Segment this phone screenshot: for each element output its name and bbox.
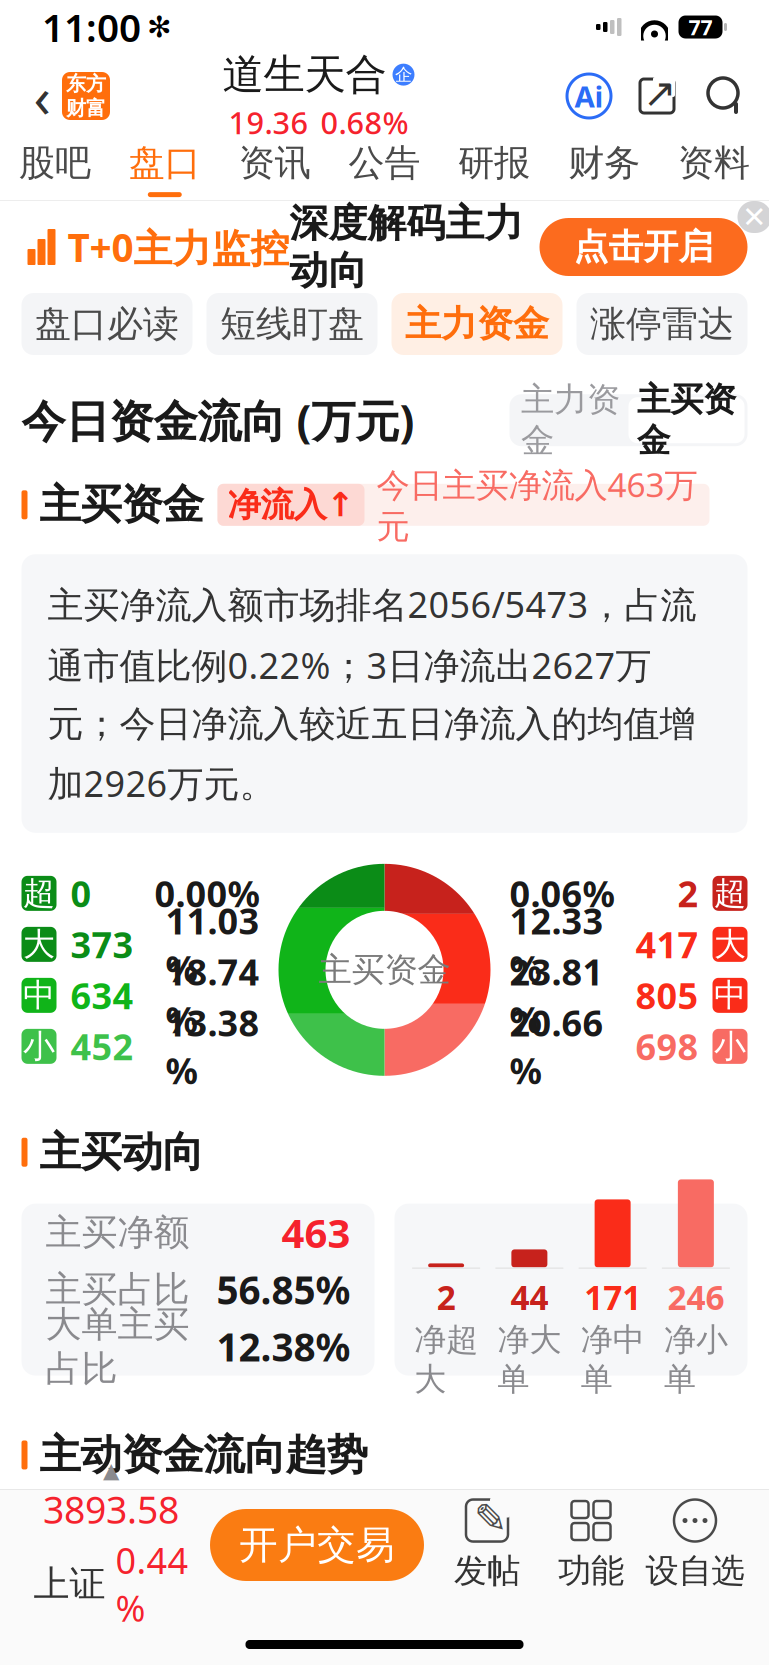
staticText: 0 xyxy=(70,869,91,917)
staticText: 2 xyxy=(437,1275,456,1319)
staticText: 2 xyxy=(677,869,698,917)
staticText: 大 xyxy=(23,925,55,964)
button[interactable]: 主力资金 xyxy=(391,293,562,355)
staticText: 超 xyxy=(23,874,55,913)
staticText: 主买动向 xyxy=(39,1127,203,1178)
staticText: 短线盯盘 xyxy=(220,302,364,346)
button[interactable]: 功能 xyxy=(539,1498,643,1591)
staticText: 净小单 xyxy=(664,1320,728,1399)
button[interactable]: 搜索 xyxy=(703,74,747,118)
staticText: 资讯 xyxy=(239,141,311,185)
staticText: 0.06% xyxy=(509,869,614,917)
staticText: 主买资金 xyxy=(318,949,450,990)
staticText: 盘口 xyxy=(129,141,201,185)
button[interactable]: 点击开启 xyxy=(539,218,747,276)
staticText: 净大单 xyxy=(497,1320,561,1399)
staticText: 深度解码主力动向 xyxy=(289,199,523,294)
staticText: 634 xyxy=(70,971,133,1019)
button[interactable]: 资料 xyxy=(659,138,769,200)
staticText: 企 xyxy=(395,64,412,85)
staticText: 发帖 xyxy=(454,1550,520,1591)
staticText: 净中单 xyxy=(581,1320,645,1399)
staticText: 小 xyxy=(23,1027,55,1066)
staticText: 12.33% xyxy=(509,896,603,992)
staticText: 主买占比 xyxy=(45,1267,189,1312)
button[interactable]: 股吧 xyxy=(0,138,110,200)
staticText: 净流入 xyxy=(227,484,326,525)
button[interactable]: 公告 xyxy=(330,138,439,200)
button[interactable]: AI 助手 xyxy=(567,74,611,118)
staticText: 主买净流入额市场排名2056/5473，占流通市值比例0.22%；3日净流出26… xyxy=(47,580,696,807)
staticText: 中 xyxy=(714,976,746,1015)
button[interactable]: ▲ xyxy=(22,1458,200,1632)
staticText: 公告 xyxy=(348,141,420,185)
staticText: 道生天合 xyxy=(222,49,386,100)
staticText: 超 xyxy=(714,874,746,913)
staticText: 小 xyxy=(714,1027,746,1066)
staticText: 417 xyxy=(635,920,698,968)
staticText: 11:00 xyxy=(42,1,141,53)
staticText: 财富 xyxy=(66,96,106,121)
staticText: 涨停雷达 xyxy=(590,302,734,346)
staticText: ▲ xyxy=(103,1458,119,1482)
button[interactable]: 关闭 xyxy=(737,201,769,233)
staticText: 今日资金流向 (万元) xyxy=(21,391,414,449)
staticText: ↗ xyxy=(643,70,677,116)
staticText: ✻ xyxy=(147,10,172,44)
button[interactable]: 财务 xyxy=(549,138,659,200)
staticText: 246 xyxy=(667,1275,724,1319)
staticText: 主力资金 xyxy=(521,379,620,461)
staticText: ‹ xyxy=(33,59,50,133)
button[interactable]: ✎ xyxy=(435,1498,539,1591)
staticText: 23.81% xyxy=(509,947,603,1043)
staticText: 股吧 xyxy=(19,141,91,185)
staticText: 主买净流入 (万元) xyxy=(49,1504,309,1549)
staticText: 805 xyxy=(635,971,698,1019)
button[interactable]: 分享 xyxy=(635,74,679,118)
staticText: T+0主力监控 xyxy=(67,221,289,273)
staticText: 0.44% xyxy=(115,1536,188,1632)
staticText: 财务 xyxy=(568,141,640,185)
staticText: 20.66% xyxy=(509,998,603,1094)
button[interactable]: 研报 xyxy=(439,138,549,200)
button[interactable]: 主买资金 xyxy=(628,397,744,443)
staticText: 主力资金 xyxy=(405,302,549,346)
staticText: 功能 xyxy=(558,1550,624,1591)
staticText: 净超大 xyxy=(414,1320,478,1399)
button[interactable]: 盘口必读 xyxy=(21,293,192,355)
staticText: 大 xyxy=(714,925,746,964)
staticText: 主买资金 xyxy=(637,379,736,461)
button[interactable]: 主力资金 xyxy=(512,397,628,443)
button[interactable]: 开户交易 xyxy=(210,1509,424,1581)
staticText: ↑ xyxy=(326,486,354,524)
staticText: 设自选 xyxy=(645,1550,744,1591)
staticText: 19.36 xyxy=(228,102,308,143)
button[interactable]: 资讯 xyxy=(220,138,330,200)
button[interactable]: 涨停雷达 xyxy=(576,293,747,355)
staticText: ✎ xyxy=(474,1496,508,1541)
staticText: 大单主买占比 xyxy=(45,1302,189,1391)
staticText: 主动资金流向趋势 xyxy=(39,1430,367,1480)
staticText: 资料 xyxy=(678,141,750,185)
button[interactable]: 设自选 xyxy=(643,1498,747,1591)
button[interactable]: 东方财富 xyxy=(62,72,110,120)
staticText: ✕ xyxy=(742,200,767,234)
staticText: 开户交易 xyxy=(239,1521,395,1569)
staticText: 452 xyxy=(70,1022,133,1070)
button[interactable]: 返回 xyxy=(22,68,62,124)
staticText: 研报 xyxy=(458,141,530,185)
staticText: 点击开启 xyxy=(573,226,713,268)
staticText: 股价 (元) xyxy=(371,1504,499,1549)
button[interactable]: 盘口 xyxy=(110,138,220,200)
staticText: 373 xyxy=(70,920,133,968)
staticText: 171 xyxy=(584,1275,641,1319)
staticText: 18.74% xyxy=(165,947,259,1043)
staticText: 463 xyxy=(281,1206,350,1259)
button[interactable]: 短线盯盘 xyxy=(206,293,377,355)
staticText: 13.38% xyxy=(165,998,259,1094)
staticText: 56.85% xyxy=(216,1264,350,1315)
staticText: 主买资金 xyxy=(39,479,203,530)
staticText: 盘口必读 xyxy=(35,302,179,346)
staticText: 今日主买净流入463万元 xyxy=(376,462,697,547)
staticText: 上证 xyxy=(33,1562,105,1606)
